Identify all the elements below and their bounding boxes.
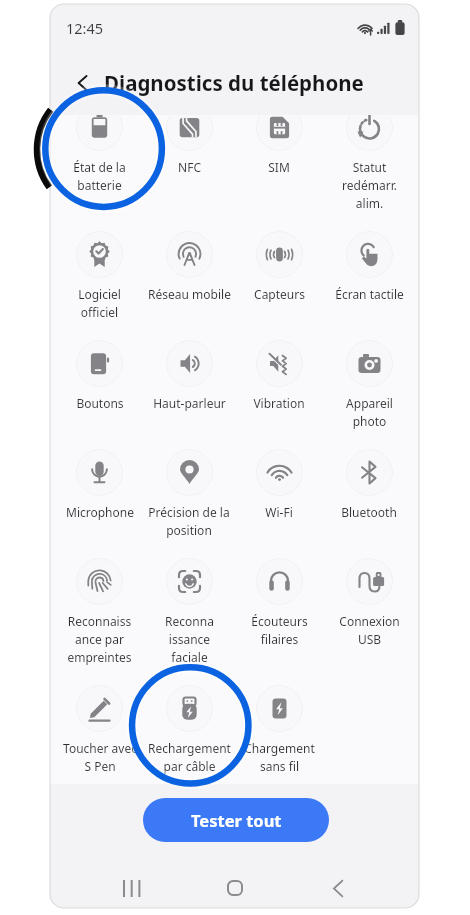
button[interactable]: Chargement sans fil [234, 681, 324, 790]
button[interactable]: Bluetooth [324, 445, 414, 535]
staticText: Écouteurs filaires [251, 613, 308, 648]
staticText: Boutons [76, 395, 124, 411]
button[interactable]: SIM [234, 100, 324, 190]
button[interactable]: Back [72, 72, 94, 94]
button[interactable]: Appareil photo [324, 336, 414, 445]
staticText: Diagnostics du téléphone [104, 69, 364, 97]
staticText: Haut-parleur [153, 395, 226, 411]
staticText: Reconna issance faciale [165, 613, 214, 666]
button[interactable]: Back [320, 870, 356, 906]
button[interactable]: Tester tout [143, 798, 329, 842]
button[interactable]: Précision de la position [144, 445, 234, 554]
staticText: SIM [268, 159, 290, 175]
button[interactable]: Écouteurs filaires [234, 554, 324, 663]
button[interactable]: Connexion USB [324, 554, 414, 663]
button[interactable]: Statut redémarr. alim. [324, 100, 414, 227]
button[interactable]: Reconna issance faciale [144, 554, 234, 681]
staticText: Statut redémarr. alim. [342, 159, 397, 212]
staticText: Appareil photo [346, 395, 393, 430]
button[interactable]: Capteurs [234, 227, 324, 317]
staticText: NFC [178, 159, 201, 175]
staticText: Reconnaiss ance par empreintes [67, 613, 132, 666]
staticText: Capteurs [254, 286, 305, 302]
staticText: Logiciel officiel [78, 286, 121, 321]
staticText: État de la batterie [73, 159, 126, 194]
staticText: Bluetooth [341, 504, 397, 520]
staticText: Rechargement par câble [148, 740, 231, 775]
staticText: Écran tactile [335, 286, 404, 302]
staticText: Connexion USB [339, 613, 400, 648]
staticText: Wi-Fi [265, 504, 293, 520]
button[interactable]: Vibration [234, 336, 324, 426]
staticText: Toucher avec S Pen [63, 740, 137, 775]
button[interactable]: Microphone [55, 445, 144, 535]
button[interactable]: Réseau mobile [144, 227, 234, 317]
button[interactable]: Reconnaiss ance par empreintes [55, 554, 144, 681]
staticText: Vibration [253, 395, 305, 411]
staticText: Chargement sans fil [244, 740, 315, 775]
button[interactable]: Écran tactile [324, 227, 414, 317]
button[interactable]: Boutons [55, 336, 144, 426]
button[interactable]: Rechargement par câble [144, 681, 234, 790]
staticText: Tester tout [191, 809, 282, 831]
button[interactable]: Wi-Fi [234, 445, 324, 535]
button[interactable]: État de la batterie [55, 100, 144, 209]
button[interactable]: Haut-parleur [144, 336, 234, 426]
button[interactable]: Logiciel officiel [55, 227, 144, 336]
button[interactable]: Home [217, 870, 253, 906]
button[interactable]: Recents [113, 870, 149, 906]
button[interactable]: NFC [144, 100, 234, 190]
staticText: Précision de la position [148, 504, 230, 539]
staticText: 12:45 [66, 18, 104, 38]
staticText: Réseau mobile [148, 286, 231, 302]
button[interactable]: Toucher avec S Pen [55, 681, 144, 790]
staticText: Microphone [66, 504, 134, 520]
